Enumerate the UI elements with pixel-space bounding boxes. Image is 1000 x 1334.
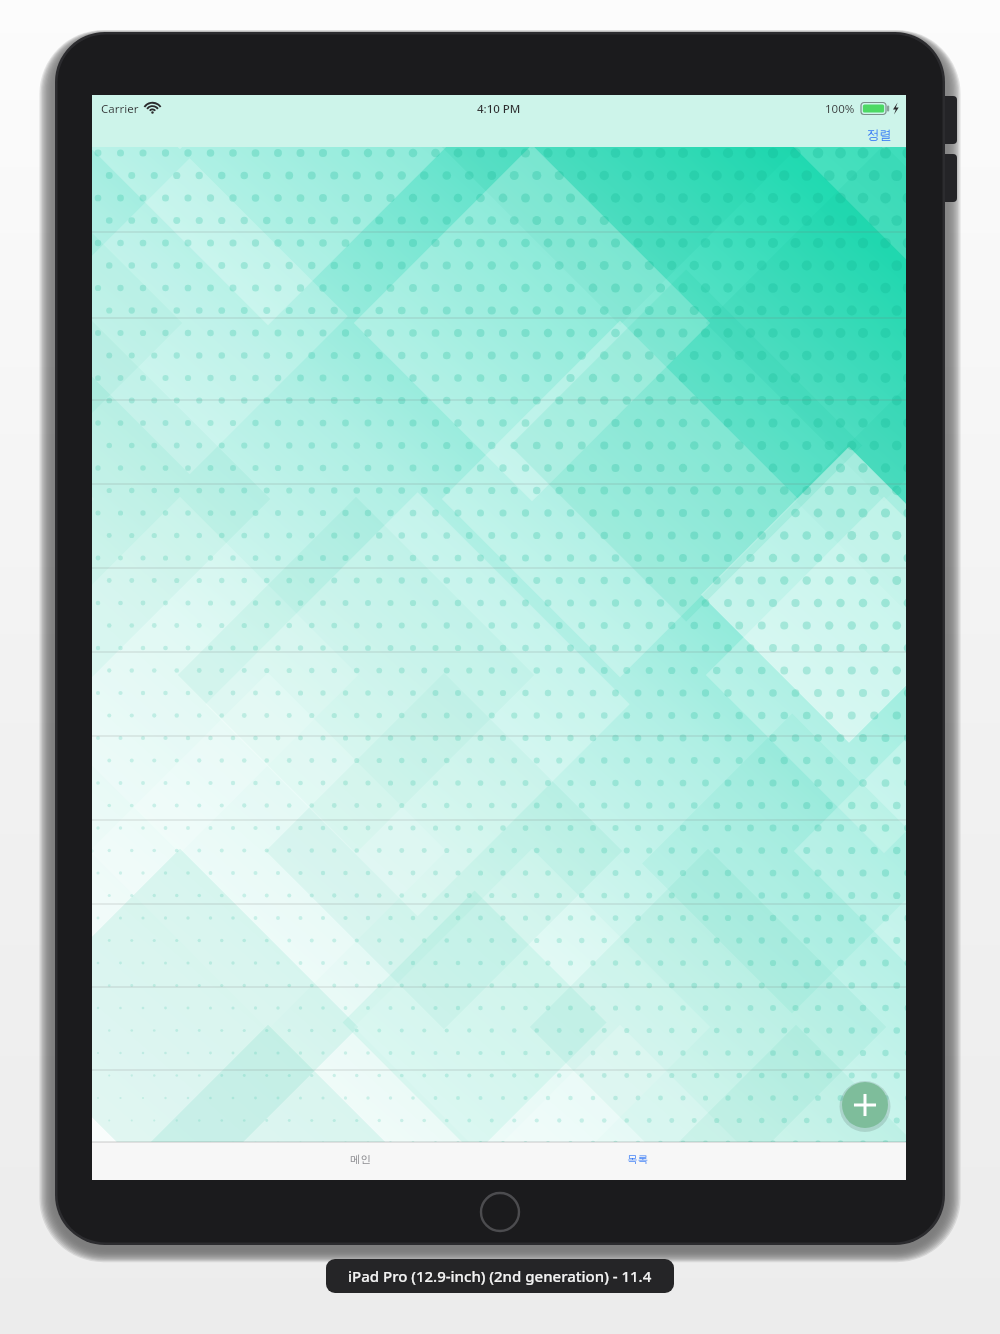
button[interactable]: 추가	[842, 1082, 888, 1128]
button[interactable]: 목록 항목 11	[92, 987, 906, 1070]
button[interactable]: 목록	[499, 1143, 906, 1180]
button[interactable]: 메인	[92, 1143, 499, 1180]
button[interactable]: 목록 항목 1	[92, 147, 906, 232]
button[interactable]: 정렬	[838, 122, 906, 147]
button[interactable]: 목록 항목 12	[92, 1070, 906, 1142]
button[interactable]: 목록 항목 9	[92, 820, 906, 904]
button[interactable]: 목록 항목 10	[92, 904, 906, 987]
button[interactable]: 목록 항목 3	[92, 318, 906, 400]
button[interactable]: 목록 항목 7	[92, 652, 906, 736]
button[interactable]: 목록 항목 8	[92, 736, 906, 820]
button[interactable]: 목록 항목 4	[92, 400, 906, 484]
button[interactable]: 목록 항목 6	[92, 568, 906, 652]
button[interactable]: 목록 항목 5	[92, 484, 906, 568]
button[interactable]: 목록 항목 2	[92, 232, 906, 318]
